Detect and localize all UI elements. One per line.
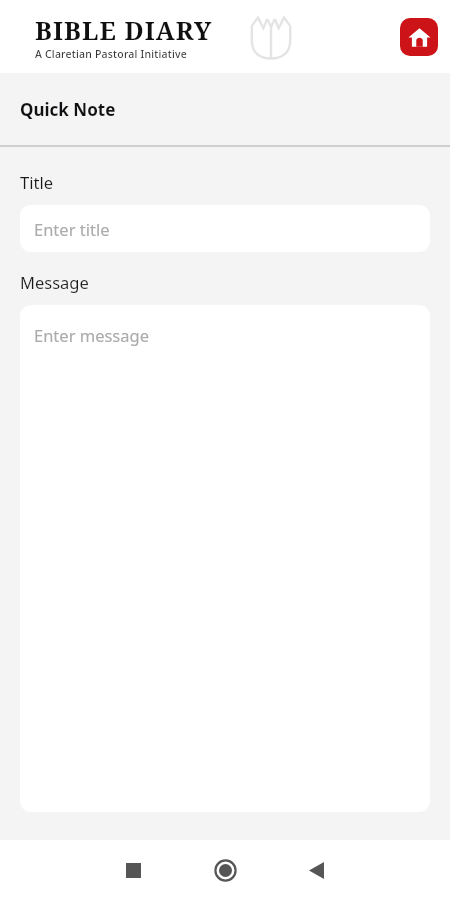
staticText: Enter title <box>34 218 110 240</box>
staticText: Title <box>20 171 53 193</box>
staticText: A Claretian Pastoral Initiative <box>35 47 187 61</box>
staticText: Message <box>20 271 89 293</box>
button[interactable]: Enter title <box>20 205 430 252</box>
staticText: BIBLE DIARY <box>35 13 213 47</box>
staticText: Enter message <box>34 324 149 346</box>
button[interactable]: Back <box>293 840 339 900</box>
button[interactable]: Home <box>202 840 248 900</box>
button[interactable]: Enter message <box>20 305 430 812</box>
button[interactable]: Home <box>400 18 438 56</box>
button[interactable]: Recent apps <box>110 840 156 900</box>
staticText: Quick Note <box>20 98 116 121</box>
